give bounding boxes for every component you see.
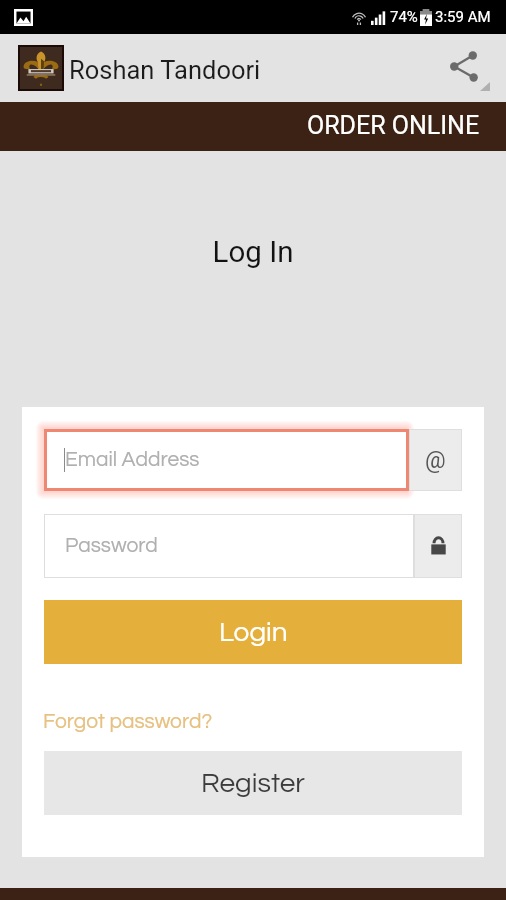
button[interactable]: Register xyxy=(44,751,462,815)
button[interactable]: Email Address xyxy=(44,429,409,491)
button[interactable]: Login xyxy=(44,600,462,664)
button[interactable]: Password xyxy=(44,514,414,578)
staticText: @ xyxy=(425,447,446,474)
staticText: Register xyxy=(201,769,305,798)
staticText: 3:59 AM xyxy=(435,8,491,26)
staticText: 74% xyxy=(390,8,418,26)
staticText: Roshan Tandoori xyxy=(69,55,261,85)
staticText: Email Address xyxy=(65,449,200,471)
button[interactable]: Forgot password? xyxy=(43,711,213,733)
staticText: ORDER ONLINE xyxy=(307,111,480,140)
staticText: Login xyxy=(219,618,288,647)
staticText: Password xyxy=(65,535,158,557)
staticText: Log In xyxy=(0,235,506,270)
button[interactable]: ORDER ONLINE xyxy=(0,102,506,151)
button[interactable]: Share xyxy=(435,38,493,96)
